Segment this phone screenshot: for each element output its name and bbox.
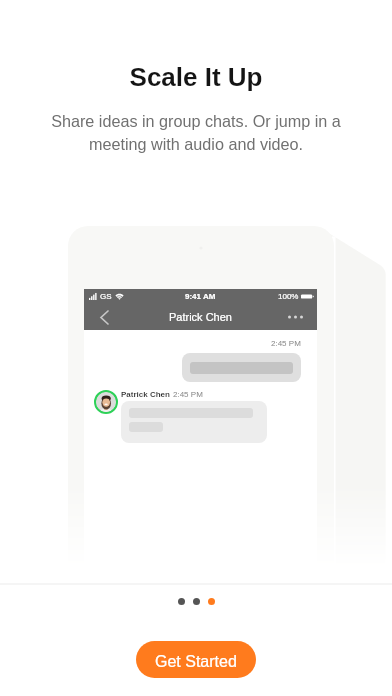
- staticText: GS: [100, 292, 112, 301]
- staticText: Scale It Up: [0, 62, 392, 91]
- staticText: 9:41 AM: [185, 292, 216, 301]
- button[interactable]: Get Started: [136, 641, 256, 678]
- button[interactable]: Back: [96, 307, 112, 327]
- staticText: 100%: [278, 292, 299, 301]
- staticText: Patrick Chen: [121, 390, 170, 399]
- staticText: 2:45 PM: [173, 390, 203, 399]
- staticText: 2:45 PM: [271, 339, 301, 348]
- staticText: Get Started: [155, 653, 237, 671]
- staticText: Share ideas in group chats. Or jump in a…: [44, 112, 348, 153]
- button[interactable]: More options: [285, 307, 305, 327]
- staticText: Patrick Chen: [169, 311, 232, 323]
